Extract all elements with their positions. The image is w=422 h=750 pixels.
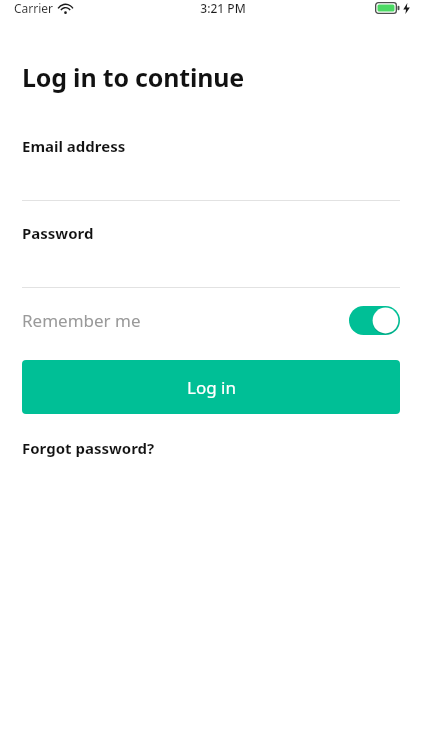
staticText: Remember me <box>22 309 141 332</box>
button[interactable]: Forgot password? <box>22 438 155 458</box>
staticText: Carrier <box>14 0 54 16</box>
button[interactable]: Remember me toggle, on <box>349 306 400 335</box>
staticText: Log in <box>187 376 236 399</box>
staticText: 3:21 PM <box>200 0 246 16</box>
staticText: Forgot password? <box>22 438 155 458</box>
button[interactable]: Log in <box>22 360 400 414</box>
staticText: Password <box>22 223 94 243</box>
staticText: Log in to continue <box>22 60 245 94</box>
staticText: Email address <box>22 136 126 156</box>
